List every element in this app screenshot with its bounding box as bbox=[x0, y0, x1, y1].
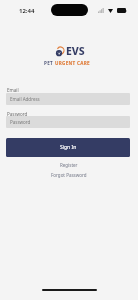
other: EVS logo bbox=[54, 46, 66, 58]
staticText: Register bbox=[60, 162, 78, 168]
staticText: Email Address bbox=[10, 96, 40, 102]
staticText: Forgot Password bbox=[51, 172, 87, 178]
button[interactable]: Forgot Password bbox=[0, 170, 138, 179]
staticText: URGENT CARE bbox=[55, 60, 90, 66]
staticText: Password bbox=[10, 119, 31, 125]
button[interactable]: Sign In bbox=[6, 138, 130, 157]
staticText: 12:44 bbox=[19, 7, 35, 15]
button[interactable]: Email Address bbox=[6, 93, 130, 105]
staticText: Email bbox=[7, 87, 19, 93]
staticText: PET bbox=[44, 60, 55, 66]
button[interactable]: Register bbox=[0, 160, 138, 169]
staticText: Sign In bbox=[60, 144, 77, 151]
button[interactable]: Password bbox=[6, 116, 130, 128]
staticText: EVS bbox=[66, 44, 85, 58]
staticText: Password bbox=[7, 111, 28, 117]
